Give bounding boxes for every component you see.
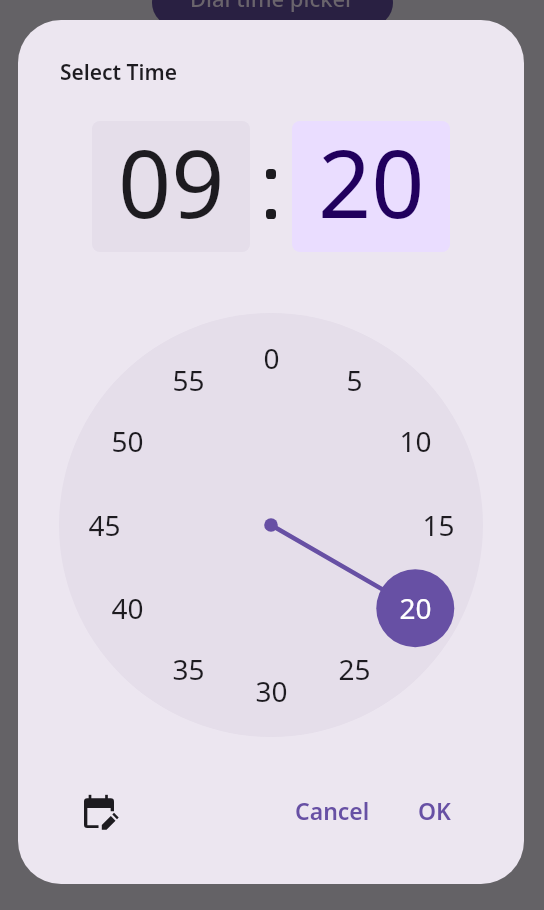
staticText: 0 [263,339,280,377]
button[interactable]: Dial time picker [152,0,393,26]
staticText: 5 [346,361,363,399]
staticText: 40 [111,589,144,627]
staticText: 20 [318,121,425,246]
button[interactable]: 15 [412,505,464,545]
button[interactable]: 55 [162,360,214,400]
button[interactable]: 35 [162,649,214,689]
button[interactable]: 10 [389,421,441,461]
staticText: 09 [118,121,225,246]
button[interactable]: Cancel [280,782,384,838]
button[interactable]: 5 [328,360,380,400]
staticText: 10 [399,422,432,460]
staticText: 20 [399,589,432,627]
staticText: Select Time [60,58,177,87]
staticText: Dial time picker [190,0,355,13]
button[interactable]: 09 [92,121,250,252]
button[interactable]: Switch to text input [71,785,127,841]
button[interactable]: 20 [292,121,450,252]
staticText: Cancel [295,795,370,826]
staticText: 30 [255,672,288,710]
button[interactable]: 25 [328,649,380,689]
staticText: 25 [338,650,371,688]
staticText: 45 [88,506,121,544]
staticText: 15 [422,506,455,544]
staticText: 35 [172,650,205,688]
button[interactable]: OK [402,782,466,838]
staticText: 50 [111,422,144,460]
button[interactable]: 20 [389,588,441,628]
button[interactable]: 50 [101,421,153,461]
button[interactable]: 40 [101,588,153,628]
staticText: OK [418,795,451,826]
button[interactable]: 0 [245,338,297,378]
button[interactable]: 30 [245,671,297,711]
staticText: 55 [172,361,205,399]
button[interactable]: 45 [78,505,130,545]
